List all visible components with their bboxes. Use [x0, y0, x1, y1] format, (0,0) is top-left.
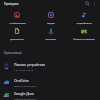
button[interactable]: Аудиофайлы: [67, 12, 100, 24]
button[interactable]: More options: [91, 0, 98, 7]
staticText: APK: [81, 30, 87, 34]
button[interactable]: OneDrive: [0, 74, 100, 90]
button[interactable]: Search: [84, 0, 91, 7]
button[interactable]: Видео: [34, 12, 67, 24]
staticText: Аудиофайлы: [76, 21, 92, 24]
staticText: Память устройства: [14, 62, 45, 67]
staticText: Загрузки: [45, 37, 56, 40]
button[interactable]: Изображения: [0, 12, 34, 24]
staticText: Документы: [10, 37, 24, 40]
button[interactable]: APK: [67, 28, 100, 40]
button[interactable]: Память устройства: [0, 58, 100, 74]
staticText: OneDrive: [14, 78, 29, 83]
staticText: Хранилище: [4, 51, 22, 55]
staticText: Проводник: [4, 2, 19, 6]
staticText: Файлы установки: [73, 37, 95, 40]
staticText: Вход не выполнен: [14, 84, 37, 87]
staticText: Изображения: [9, 21, 26, 24]
staticText: 115 ГБ из 128 ГБ: [14, 68, 34, 71]
button[interactable]: Документы: [0, 28, 34, 40]
staticText: Видео: [47, 21, 55, 24]
button[interactable]: Google Диск: [0, 90, 100, 100]
staticText: Вход не выполнен: [14, 97, 37, 100]
staticText: Google Диск: [14, 91, 35, 96]
button[interactable]: Загрузки: [34, 28, 67, 40]
